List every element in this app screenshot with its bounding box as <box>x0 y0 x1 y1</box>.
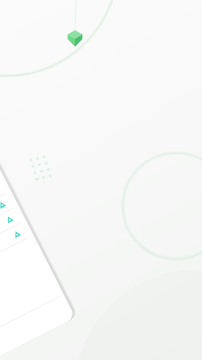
other: Phone app preview illustration <box>0 0 202 360</box>
button[interactable] <box>0 0 202 360</box>
